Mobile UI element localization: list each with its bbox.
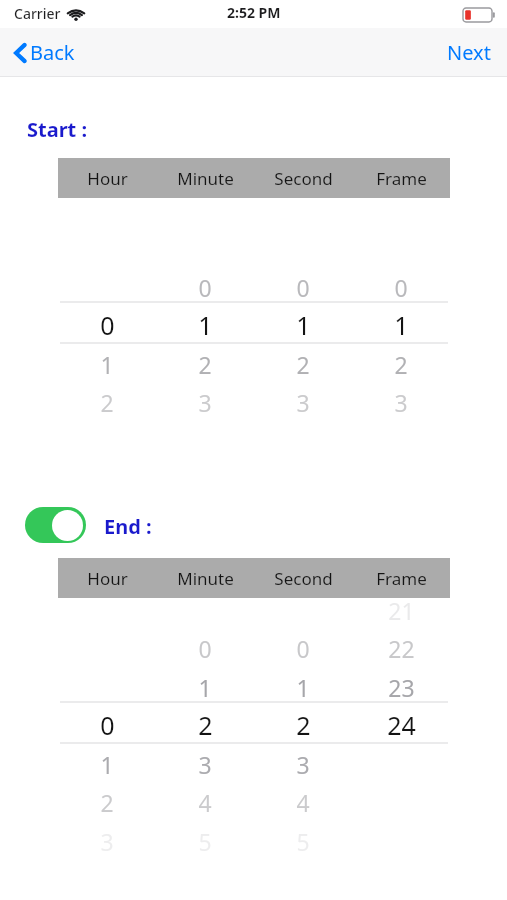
staticText: Hour xyxy=(87,167,128,190)
staticText: 0 xyxy=(100,308,115,342)
staticText: Frame xyxy=(376,167,427,190)
staticText: Frame xyxy=(376,567,427,590)
staticText: 0 xyxy=(100,708,115,742)
staticText: 1 xyxy=(100,749,114,780)
staticText: 4 xyxy=(198,787,212,818)
staticText: Minute xyxy=(177,167,234,190)
staticText: 2:52 PM xyxy=(227,3,281,22)
staticText: 1 xyxy=(394,308,409,342)
staticText: Second xyxy=(274,167,333,190)
staticText: 0 xyxy=(296,633,310,664)
staticText: 1 xyxy=(198,308,213,342)
button[interactable]: Back xyxy=(10,37,79,68)
staticText: End : xyxy=(104,513,152,540)
staticText: 2 xyxy=(394,349,408,380)
staticText: 2 xyxy=(198,708,213,742)
button[interactable]: Hour xyxy=(58,567,156,590)
staticText: 0 xyxy=(296,272,310,303)
staticText: 2 xyxy=(198,349,212,380)
staticText: 3 xyxy=(296,387,310,418)
button[interactable]: Frame xyxy=(352,567,450,590)
staticText: 1 xyxy=(100,349,114,380)
staticText: 3 xyxy=(198,749,212,780)
staticText: 2 xyxy=(296,708,311,742)
staticText: 5 xyxy=(198,826,212,857)
staticText: Second xyxy=(274,567,333,590)
staticText: 1 xyxy=(296,308,311,342)
button[interactable]: Second xyxy=(254,567,352,590)
staticText: Carrier xyxy=(14,4,61,23)
staticText: 5 xyxy=(296,826,310,857)
staticText: 0 xyxy=(394,272,408,303)
staticText: 0 xyxy=(198,272,212,303)
button[interactable]: Hour xyxy=(58,167,156,190)
staticText: Minute xyxy=(177,567,234,590)
staticText: 1 xyxy=(198,672,212,703)
staticText: 3 xyxy=(394,387,408,418)
staticText: 1 xyxy=(296,672,310,703)
button[interactable]: Minute xyxy=(156,567,254,590)
button[interactable]: Second xyxy=(254,167,352,190)
staticText: 2 xyxy=(100,787,114,818)
button[interactable]: Next xyxy=(441,35,497,70)
staticText: 4 xyxy=(296,787,310,818)
button[interactable]: Enable end time xyxy=(25,507,86,543)
staticText: Next xyxy=(447,39,491,66)
staticText: Start : xyxy=(27,116,88,143)
staticText: 21 xyxy=(388,595,415,626)
staticText: 22 xyxy=(388,633,415,664)
staticText: 2 xyxy=(100,387,114,418)
staticText: 0 xyxy=(198,633,212,664)
staticText: Hour xyxy=(87,567,128,590)
staticText: 2 xyxy=(296,349,310,380)
button[interactable]: Frame xyxy=(352,167,450,190)
staticText: 3 xyxy=(198,387,212,418)
staticText: 24 xyxy=(387,708,416,742)
staticText: 3 xyxy=(296,749,310,780)
staticText: 3 xyxy=(100,826,114,857)
staticText: Back xyxy=(30,39,75,66)
staticText: 23 xyxy=(388,672,415,703)
button[interactable]: Minute xyxy=(156,167,254,190)
